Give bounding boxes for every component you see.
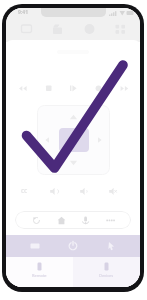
button[interactable]: Volume up xyxy=(45,183,61,199)
staticText: Remote xyxy=(32,273,47,278)
button[interactable]: Stop xyxy=(39,79,57,97)
button[interactable]: Keyboard xyxy=(26,237,44,255)
button[interactable]: Devices xyxy=(73,257,140,287)
button[interactable]: Power xyxy=(64,237,82,255)
button[interactable]: Mute xyxy=(104,183,120,199)
button[interactable]: Play xyxy=(64,79,82,97)
button[interactable]: Menu xyxy=(102,212,118,228)
button[interactable]: Closed captions xyxy=(16,183,32,199)
staticText: 9:41 xyxy=(18,9,28,16)
staticText: Devices xyxy=(99,273,114,278)
button[interactable]: Record xyxy=(89,79,107,97)
button[interactable]: Keypad xyxy=(109,18,131,40)
button[interactable]: Microphone xyxy=(77,212,93,228)
button[interactable]: Volume down xyxy=(75,183,91,199)
button[interactable]: Home xyxy=(53,212,69,228)
button[interactable]: Pointer xyxy=(102,237,120,255)
staticText: CC xyxy=(21,188,28,195)
other: Verified xyxy=(0,0,147,300)
button[interactable]: Select xyxy=(59,128,89,152)
button[interactable]: Apps xyxy=(46,18,68,40)
button[interactable]: Fast forward xyxy=(115,79,133,97)
button[interactable]: Power xyxy=(78,18,100,40)
button[interactable]: Back xyxy=(28,212,44,228)
button[interactable]: Rewind xyxy=(13,79,31,97)
button[interactable]: Remote xyxy=(6,257,73,287)
